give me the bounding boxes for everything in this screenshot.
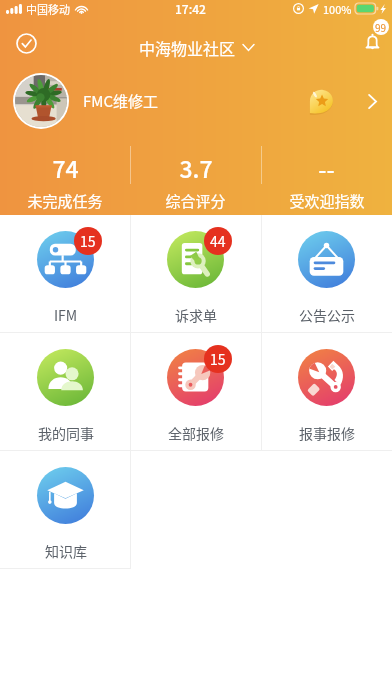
staticText: 报事报修: [299, 423, 355, 443]
staticText: 74: [52, 151, 79, 184]
staticText: 我的同事: [38, 423, 94, 443]
button[interactable]: FMC维修工: [0, 70, 392, 132]
button[interactable]: Check in: [6, 23, 46, 63]
button[interactable]: 15: [130, 333, 261, 451]
staticText: 受欢迎指数: [289, 190, 365, 212]
button[interactable]: 中海物业社区: [139, 36, 254, 59]
staticText: 3.7: [179, 151, 213, 184]
staticText: 综合评分: [165, 190, 226, 212]
staticText: --: [318, 151, 335, 184]
staticText: 15: [80, 231, 96, 251]
staticText: 全部报修: [168, 423, 224, 443]
button[interactable]: Notifications: [350, 26, 392, 68]
staticText: 15: [210, 349, 226, 369]
staticText: 中国移动: [26, 1, 70, 17]
staticText: 17:42: [175, 0, 206, 17]
button[interactable]: 74: [0, 132, 130, 215]
button[interactable]: 我的同事: [0, 333, 130, 451]
button[interactable]: --: [261, 132, 392, 215]
staticText: 中海物业社区: [139, 36, 236, 59]
staticText: 未完成任务: [27, 190, 103, 212]
staticText: 公告公示: [299, 305, 355, 325]
staticText: FMC维修工: [83, 90, 159, 112]
staticText: 诉求单: [175, 305, 217, 325]
staticText: 99: [375, 20, 387, 34]
staticText: IFM: [54, 305, 78, 325]
button[interactable]: 报事报修: [261, 333, 392, 451]
button[interactable]: 公告公示: [261, 215, 392, 333]
staticText: 44: [210, 231, 226, 251]
button[interactable]: 44: [130, 215, 261, 333]
staticText: 100%: [323, 1, 352, 17]
button[interactable]: 知识库: [0, 451, 130, 569]
staticText: 知识库: [45, 541, 87, 561]
button[interactable]: 15: [0, 215, 130, 333]
button[interactable]: 3.7: [130, 132, 261, 215]
